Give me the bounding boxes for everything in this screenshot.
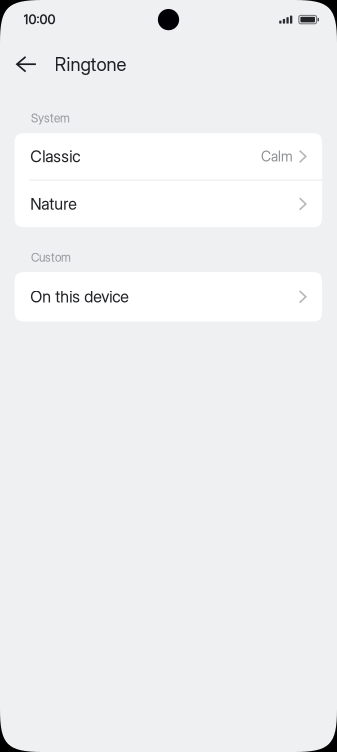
- button[interactable]: Back: [0, 48, 54, 80]
- staticText: Classic: [30, 147, 80, 166]
- button[interactable]: Classic: [15, 133, 322, 180]
- staticText: On this device: [30, 287, 129, 306]
- staticText: Custom: [31, 250, 71, 265]
- button[interactable]: On this device: [15, 272, 322, 322]
- button[interactable]: Nature: [15, 181, 322, 227]
- staticText: System: [31, 111, 70, 125]
- staticText: Ringtone: [54, 53, 126, 75]
- staticText: 10:00: [23, 12, 55, 27]
- staticText: Nature: [30, 194, 77, 214]
- staticText: Calm: [261, 148, 293, 165]
